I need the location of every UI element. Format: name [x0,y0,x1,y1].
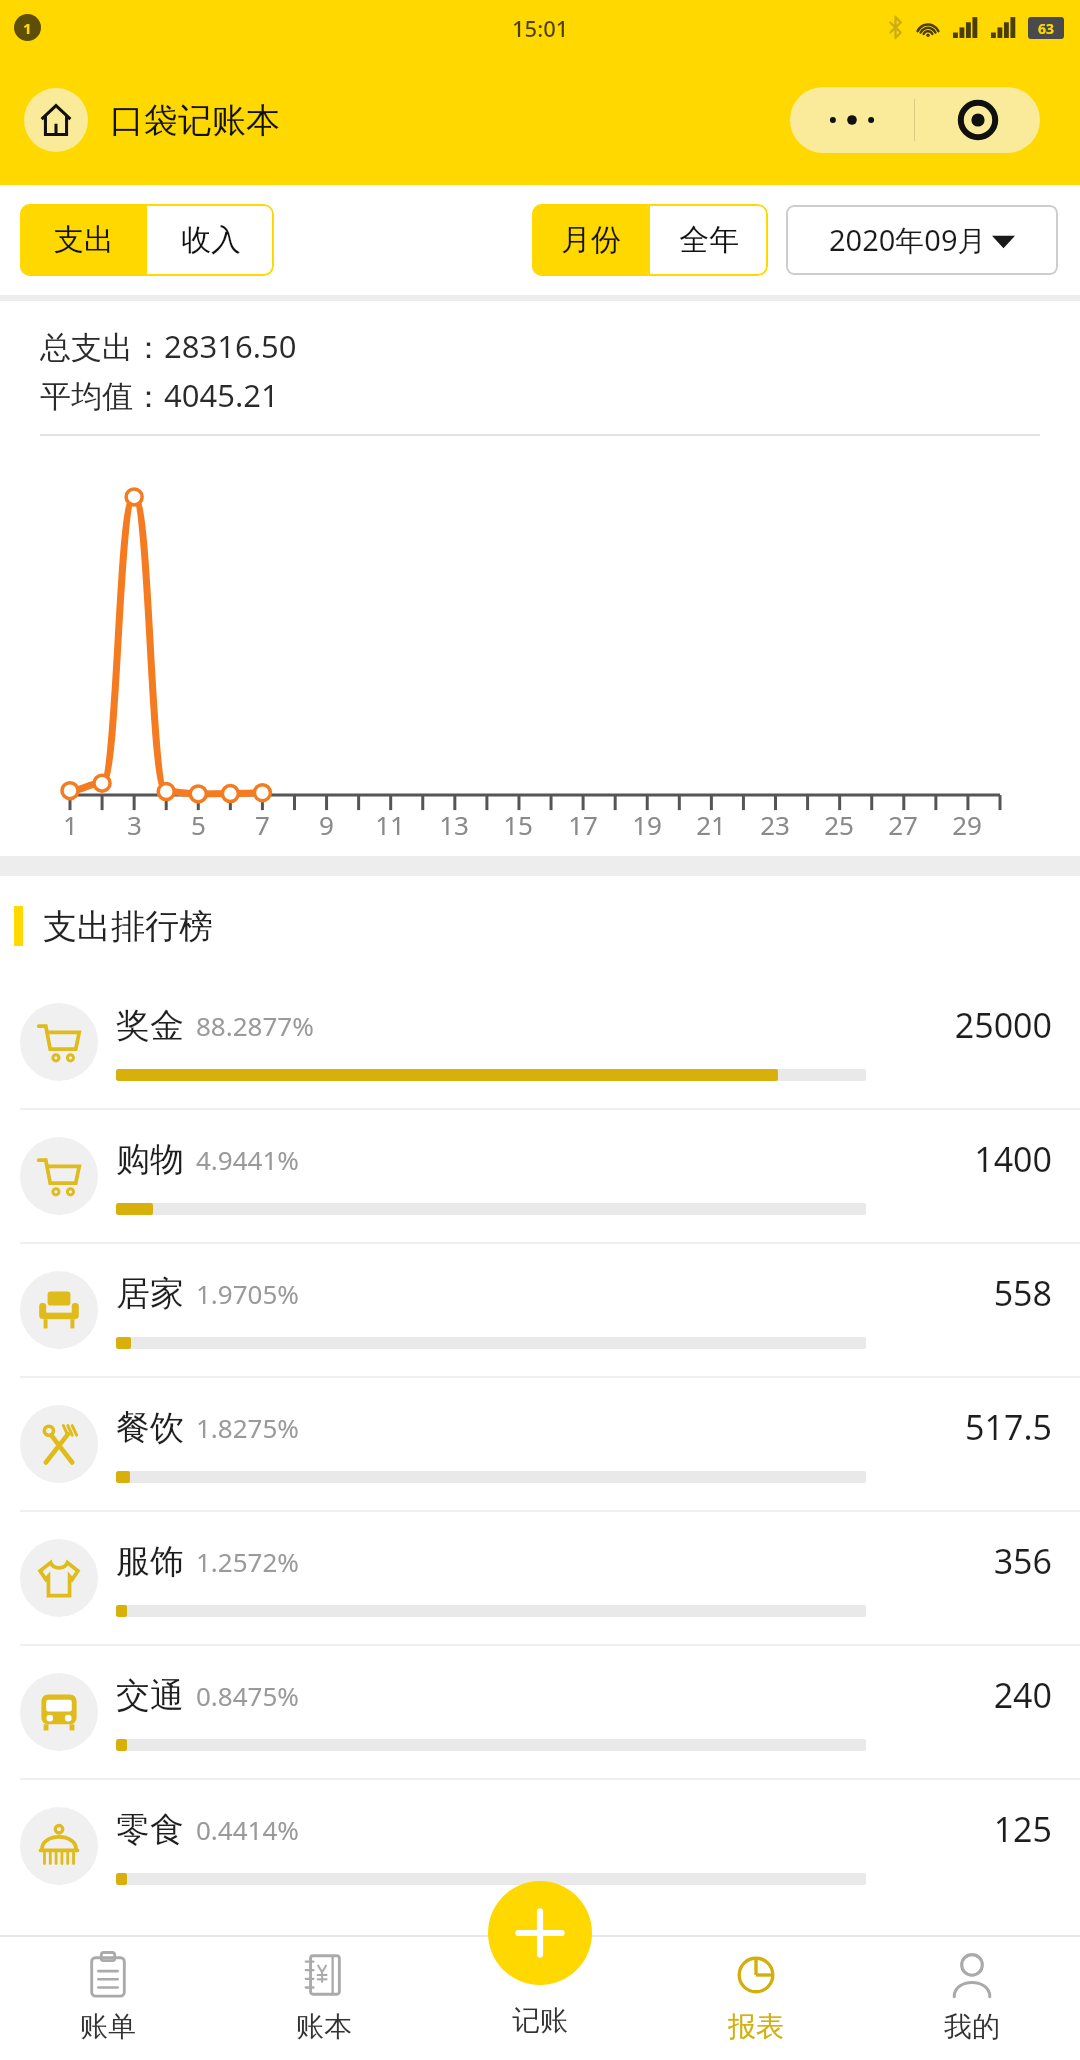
button[interactable]: 2020年09月 [786,205,1058,275]
staticText: 1.9705% [196,1276,299,1311]
staticText: 1.8275% [196,1410,299,1445]
staticText: 7 [255,807,270,842]
button[interactable]: 支出 [20,204,147,276]
button[interactable]: 全年 [650,204,768,276]
staticText: 13 [439,807,469,842]
button[interactable]: 月份 [532,204,650,276]
staticText: 21 [696,807,726,842]
staticText: 19 [632,807,662,842]
staticText: 平均值：4045.21 [40,374,279,416]
staticText: 88.2877% [196,1008,314,1043]
button[interactable]: 服饰 [0,1510,1080,1644]
staticText: 356 [882,1538,1052,1584]
button[interactable]: More options [790,87,914,153]
staticText: 9 [319,807,334,842]
staticText: 558 [882,1270,1052,1316]
staticText: 25 [824,807,854,842]
staticText: 交通 [116,1674,184,1717]
staticText: 全年 [679,221,739,259]
button[interactable]: 交通 [0,1644,1080,1778]
staticText: 1 [23,18,32,38]
staticText: 1 [63,807,78,842]
button[interactable]: 居家 [0,1242,1080,1376]
button[interactable]: 餐饮 [0,1376,1080,1510]
staticText: 支出排行榜 [43,905,213,948]
staticText: 收入 [181,221,241,259]
button[interactable]: Add record [488,1881,592,1985]
staticText: 3 [127,807,142,842]
button[interactable]: 账单 [0,1935,216,2060]
staticText: 63 [1038,19,1055,38]
staticText: 27 [888,807,918,842]
staticText: 支出 [54,221,114,259]
staticText: 1400 [882,1136,1052,1182]
button[interactable]: 购物 [0,1108,1080,1242]
staticText: 125 [882,1806,1052,1852]
button[interactable]: Close [915,87,1040,153]
staticText: 25000 [882,1002,1052,1048]
staticText: 记账 [512,2003,568,2038]
button[interactable]: 报表 [648,1935,864,2060]
staticText: 0.8475% [196,1678,299,1713]
staticText: 居家 [116,1272,184,1315]
staticText: 购物 [116,1138,184,1181]
staticText: 我的 [944,2009,1000,2044]
staticText: 报表 [728,2009,784,2044]
staticText: 月份 [561,221,621,259]
staticText: 29 [952,807,982,842]
staticText: 零食 [116,1808,184,1851]
staticText: 17 [568,807,598,842]
staticText: 账本 [296,2009,352,2044]
staticText: 1.2572% [196,1544,299,1579]
button[interactable]: Home [24,88,88,152]
button[interactable]: 账本 [216,1935,432,2060]
staticText: 口袋记账本 [110,99,280,142]
staticText: 奖金 [116,1004,184,1047]
staticText: 餐饮 [116,1406,184,1449]
button[interactable]: 我的 [864,1935,1080,2060]
staticText: 23 [760,807,790,842]
staticText: 服饰 [116,1540,184,1583]
staticText: 517.5 [882,1404,1052,1450]
button[interactable]: 零食 [0,1778,1080,1912]
staticText: 11 [375,807,405,842]
staticText: 总支出：28316.50 [40,325,297,367]
staticText: 15:01 [512,13,569,43]
button[interactable]: 奖金 [0,976,1080,1108]
staticText: 账单 [80,2009,136,2044]
staticText: 0.4414% [196,1812,299,1847]
staticText: 4.9441% [196,1142,299,1177]
staticText: 2020年09月 [829,220,987,260]
button[interactable]: 收入 [147,204,274,276]
staticText: 15 [503,807,533,842]
staticText: 240 [882,1672,1052,1718]
staticText: 5 [191,807,206,842]
